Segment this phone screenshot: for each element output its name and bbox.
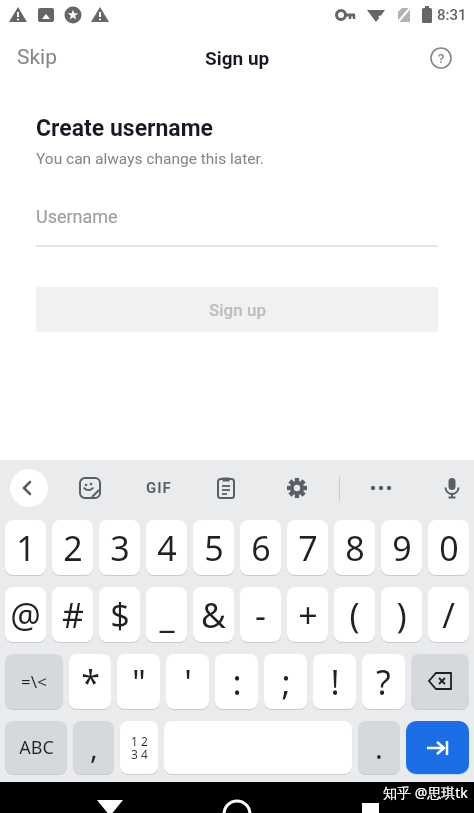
button[interactable] — [411, 654, 469, 709]
button[interactable]: $ — [99, 587, 140, 642]
button[interactable]: 9 — [381, 520, 422, 575]
staticText: _ — [159, 592, 175, 638]
button[interactable]: 0 — [428, 520, 469, 575]
staticText: + — [298, 592, 318, 638]
button[interactable] — [70, 468, 110, 508]
button[interactable]: 3 — [99, 520, 140, 575]
staticText: 8 — [345, 525, 365, 571]
button[interactable]: ( — [334, 587, 375, 642]
button[interactable] — [206, 468, 246, 508]
staticText: ? — [376, 659, 391, 705]
button[interactable]: GIF — [139, 468, 179, 508]
staticText: ? — [438, 51, 445, 66]
staticText: 3 — [110, 525, 130, 571]
staticText: 9 — [392, 525, 412, 571]
button[interactable] — [277, 468, 317, 508]
staticText: ABC — [19, 735, 54, 760]
button[interactable]: 1 — [5, 520, 46, 575]
staticText: $ — [110, 592, 130, 638]
staticText: Skip — [17, 45, 58, 70]
staticText: ! — [330, 659, 340, 705]
staticText: Sign up — [209, 300, 266, 320]
staticText: 1 — [16, 525, 36, 571]
staticText: 4 — [157, 525, 177, 571]
staticText: ' — [184, 659, 192, 705]
button[interactable]: . — [358, 721, 400, 774]
button[interactable]: Sign up — [36, 287, 438, 332]
button[interactable]: 5 — [193, 520, 234, 575]
staticText: ( — [349, 592, 360, 638]
staticText: 知乎 @思琪tk — [383, 783, 468, 802]
button[interactable]: Skip — [17, 45, 58, 70]
staticText: - — [255, 592, 266, 638]
button[interactable]: ? — [362, 654, 405, 709]
button[interactable]: 2 — [52, 520, 93, 575]
button[interactable]: / — [428, 587, 469, 642]
button[interactable]: 8 — [334, 520, 375, 575]
staticText: : — [232, 659, 242, 705]
staticText: # — [62, 592, 84, 638]
button[interactable]: - — [240, 587, 281, 642]
button[interactable] — [432, 468, 472, 508]
staticText: GIF — [146, 479, 172, 497]
staticText: 0 — [439, 525, 459, 571]
button[interactable]: 6 — [240, 520, 281, 575]
staticText: =\< — [21, 670, 47, 693]
staticText: 5 — [204, 525, 224, 571]
button[interactable]: , — [73, 721, 114, 774]
staticText: Sign up — [205, 47, 270, 69]
staticText: / — [442, 592, 455, 638]
staticText: 1 2 3 4 — [131, 733, 148, 763]
staticText: 6 — [251, 525, 271, 571]
button[interactable]: : — [215, 654, 258, 709]
staticText: Create username — [36, 115, 214, 142]
staticText: ; — [281, 659, 291, 705]
button[interactable]: ! — [313, 654, 356, 709]
button[interactable]: & — [193, 587, 234, 642]
button[interactable]: " — [117, 654, 160, 709]
button[interactable] — [10, 469, 48, 507]
staticText: @ — [10, 592, 41, 638]
staticText: ) — [396, 592, 407, 638]
button[interactable]: 4 — [146, 520, 187, 575]
staticText: . — [375, 728, 383, 767]
button[interactable]: =\< — [5, 654, 63, 709]
button[interactable]: 1 2 3 4 — [120, 721, 158, 774]
staticText: You can always change this later. — [36, 150, 264, 168]
staticText: 2 — [63, 525, 83, 571]
button[interactable]: # — [52, 587, 93, 642]
staticText: , — [90, 728, 98, 767]
button[interactable] — [361, 468, 401, 508]
button[interactable]: ) — [381, 587, 422, 642]
staticText: Username — [36, 206, 118, 227]
button[interactable]: ? — [430, 47, 452, 69]
staticText: 8:31 — [437, 6, 467, 24]
staticText: 7 — [298, 525, 318, 571]
button[interactable]: ; — [264, 654, 307, 709]
button[interactable]: ABC — [5, 721, 67, 774]
staticText: " — [132, 659, 146, 705]
button[interactable]: * — [69, 654, 111, 709]
button[interactable] — [406, 721, 469, 774]
button[interactable]: + — [287, 587, 328, 642]
button[interactable]: @ — [5, 587, 46, 642]
button[interactable]: 7 — [287, 520, 328, 575]
staticText: & — [201, 592, 226, 638]
staticText: * — [81, 659, 100, 705]
button[interactable]: ' — [166, 654, 209, 709]
button[interactable]: _ — [146, 587, 187, 642]
